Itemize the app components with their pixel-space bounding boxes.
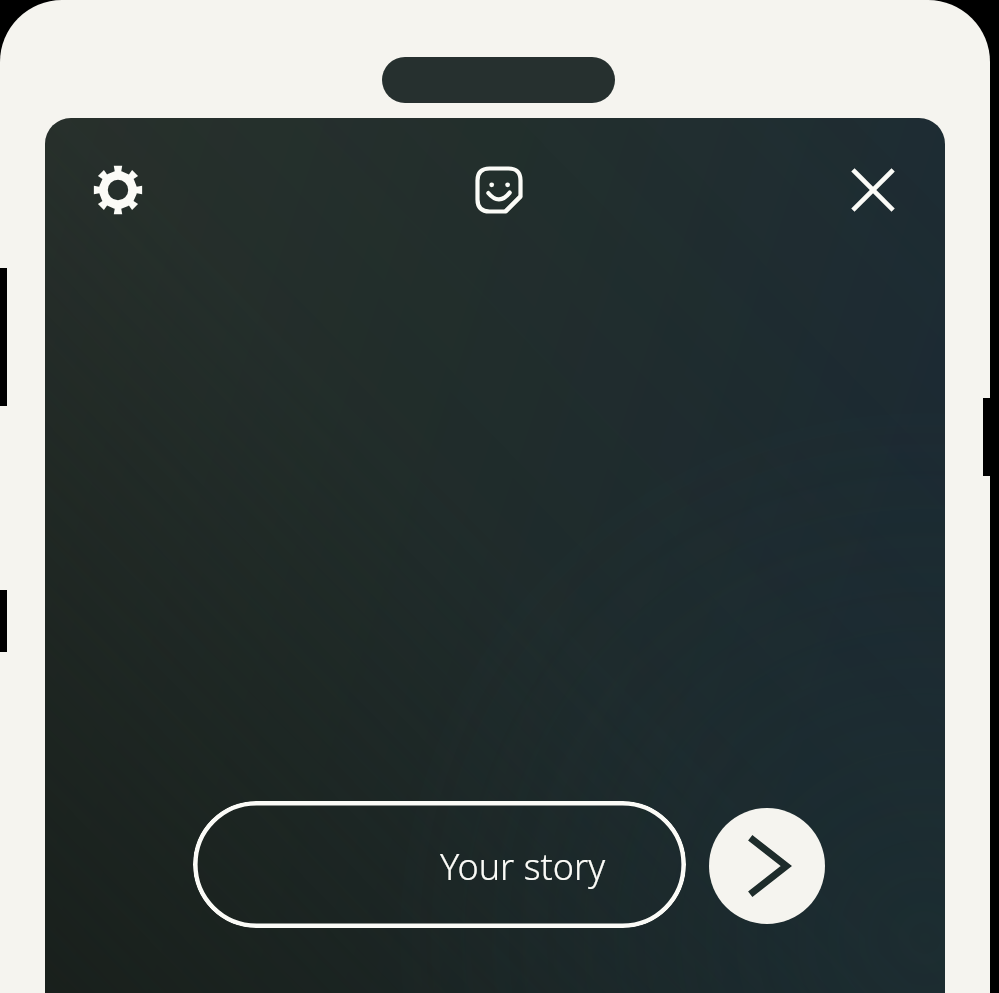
- button[interactable]: Close: [848, 165, 898, 215]
- button[interactable]: Your story: [193, 801, 686, 928]
- button[interactable]: Send: [709, 808, 825, 924]
- button[interactable]: Settings: [93, 165, 143, 215]
- button[interactable]: Stickers: [474, 165, 524, 215]
- staticText: Your story: [440, 842, 606, 891]
